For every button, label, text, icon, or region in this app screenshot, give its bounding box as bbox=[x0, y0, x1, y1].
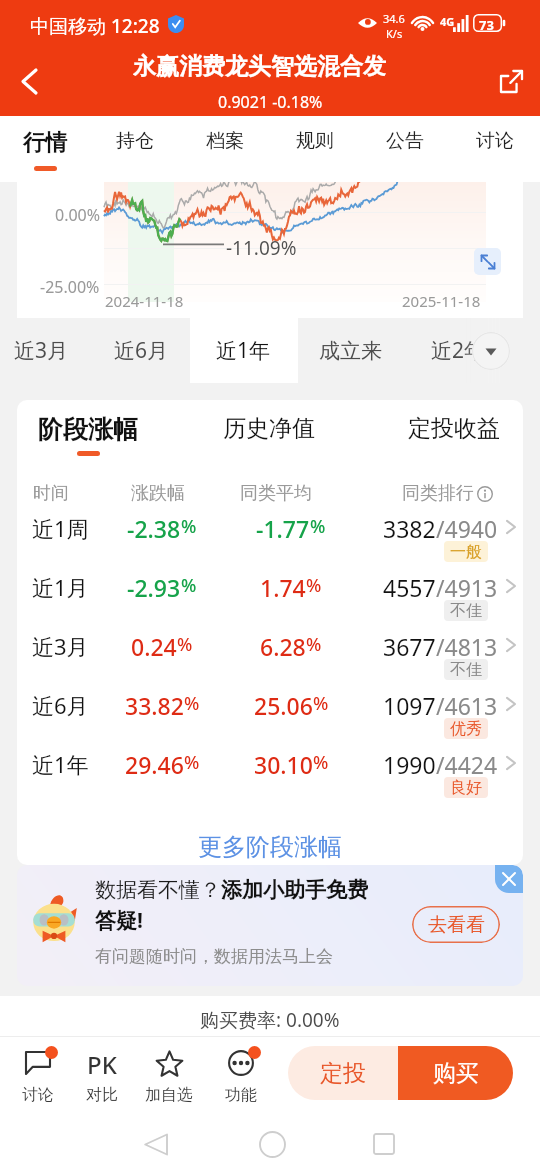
staticText: 购买费率: 0.00% bbox=[200, 1007, 340, 1033]
staticText: 添加小助手免费 bbox=[221, 877, 368, 903]
staticText: 优秀 bbox=[450, 719, 482, 739]
staticText: 中国移动 12:28 bbox=[30, 13, 160, 39]
staticText: -11.09% bbox=[226, 235, 297, 261]
button[interactable]: 近1月 bbox=[17, 554, 523, 613]
staticText: % bbox=[306, 632, 322, 657]
staticText: 近1月 bbox=[32, 572, 89, 602]
button[interactable]: Home bbox=[246, 1118, 298, 1170]
button[interactable]: 讨论 bbox=[10, 1048, 66, 1112]
staticText: 一般 bbox=[450, 542, 482, 562]
button[interactable]: 近6月 bbox=[89, 318, 193, 383]
staticText: 良好 bbox=[450, 778, 482, 798]
staticText: 2025-11-18 bbox=[402, 291, 481, 311]
staticText: /4813 bbox=[436, 631, 498, 662]
staticText: % bbox=[184, 750, 200, 775]
staticText: 25.06 bbox=[254, 690, 313, 721]
staticText: 购买 bbox=[433, 1059, 479, 1088]
button[interactable]: Share bbox=[482, 52, 540, 110]
button[interactable]: 讨论 bbox=[450, 116, 540, 182]
staticText: 近3月 bbox=[32, 631, 89, 661]
staticText: % bbox=[313, 750, 329, 775]
staticText: /4424 bbox=[436, 749, 498, 780]
button[interactable]: 更多阶段涨幅 bbox=[17, 829, 523, 865]
button[interactable]: 近1年 bbox=[17, 731, 523, 790]
staticText: 近3月 bbox=[14, 336, 69, 365]
button[interactable]: 近1年 bbox=[191, 318, 295, 383]
staticText: 1990 bbox=[383, 749, 436, 780]
staticText: K/s bbox=[386, 26, 403, 41]
staticText: 2024-11-18 bbox=[105, 291, 184, 311]
button[interactable]: 历史净值 bbox=[207, 400, 331, 462]
staticText: 33.82 bbox=[125, 690, 184, 721]
staticText: 同类平均 bbox=[240, 482, 312, 505]
staticText: 行情 bbox=[23, 129, 67, 157]
button[interactable]: 近1周 bbox=[17, 495, 523, 554]
button[interactable]: Back bbox=[130, 1118, 182, 1170]
staticText: 永赢消费龙头智选混合发起 bbox=[133, 52, 407, 79]
staticText: -2.93 bbox=[127, 572, 181, 603]
staticText: 0.24 bbox=[131, 631, 177, 662]
button[interactable]: Back bbox=[0, 52, 58, 110]
staticText: 不佳 bbox=[450, 601, 482, 621]
staticText: 历史净值 bbox=[223, 414, 315, 443]
button[interactable]: 近2年 bbox=[406, 318, 510, 383]
button[interactable]: 购买 bbox=[398, 1046, 513, 1100]
button[interactable]: 档案 bbox=[180, 116, 270, 182]
staticText: 34.6 bbox=[383, 11, 405, 26]
staticText: 近6月 bbox=[114, 336, 169, 365]
button[interactable]: 定投 bbox=[288, 1046, 398, 1100]
staticText: % bbox=[177, 632, 193, 657]
button[interactable]: 行情 bbox=[0, 116, 90, 182]
staticText: 3382 bbox=[383, 513, 436, 544]
staticText: 有问题随时问，数据用法马上会 bbox=[95, 946, 333, 967]
staticText: PK bbox=[87, 1048, 117, 1078]
staticText: 数据看不懂？ bbox=[95, 877, 221, 903]
staticText: 规则 bbox=[296, 129, 334, 153]
button[interactable]: 定投收益 bbox=[392, 400, 516, 462]
staticText: 涨跌幅 bbox=[131, 482, 185, 505]
staticText: % bbox=[306, 573, 322, 598]
staticText: 对比 bbox=[86, 1085, 118, 1105]
button[interactable]: 公告 bbox=[360, 116, 450, 182]
staticText: % bbox=[313, 691, 329, 716]
staticText: 1097 bbox=[383, 690, 436, 721]
staticText: /4613 bbox=[436, 690, 498, 721]
button[interactable]: PK bbox=[74, 1048, 130, 1112]
staticText: 73 bbox=[479, 16, 494, 34]
staticText: 近1年 bbox=[216, 336, 271, 365]
staticText: -2.38 bbox=[127, 513, 181, 544]
button[interactable]: 近3月 bbox=[0, 318, 93, 383]
button[interactable]: More ranges bbox=[472, 332, 510, 370]
staticText: 档案 bbox=[206, 129, 244, 153]
staticText: /4940 bbox=[436, 513, 498, 544]
staticText: 6.28 bbox=[260, 631, 306, 662]
staticText: 公告 bbox=[386, 129, 424, 153]
staticText: 更多阶段涨幅 bbox=[198, 832, 342, 862]
button[interactable]: 近6月 bbox=[17, 672, 523, 731]
button[interactable]: Fullscreen chart bbox=[474, 248, 501, 275]
button[interactable]: 持仓 bbox=[90, 116, 180, 182]
staticText: 讨论 bbox=[22, 1085, 54, 1105]
button[interactable]: Recents bbox=[358, 1118, 410, 1170]
staticText: 答疑! bbox=[95, 906, 143, 935]
staticText: 近6月 bbox=[32, 690, 89, 720]
button[interactable]: 规则 bbox=[270, 116, 360, 182]
button[interactable]: 加自选 bbox=[141, 1048, 197, 1112]
button[interactable]: Close bbox=[495, 865, 523, 893]
staticText: 29.46 bbox=[125, 749, 184, 780]
staticText: 持仓 bbox=[116, 129, 154, 153]
staticText: 同类排行 bbox=[402, 482, 474, 505]
button[interactable]: 去看看 bbox=[412, 906, 500, 943]
staticText: % bbox=[310, 514, 326, 539]
staticText: 近2年 bbox=[431, 336, 486, 365]
staticText: 不佳 bbox=[450, 660, 482, 680]
button[interactable]: 成立来 bbox=[298, 318, 402, 383]
staticText: 加自选 bbox=[145, 1085, 193, 1105]
button[interactable]: 阶段涨幅 bbox=[26, 400, 150, 462]
button[interactable]: 数据看不懂？ bbox=[17, 865, 523, 986]
button[interactable]: 近3月 bbox=[17, 613, 523, 672]
button[interactable]: 功能 bbox=[213, 1048, 269, 1112]
staticText: 时间 bbox=[33, 482, 69, 505]
staticText: % bbox=[181, 514, 197, 539]
staticText: 0.9021 -0.18% bbox=[218, 91, 323, 113]
